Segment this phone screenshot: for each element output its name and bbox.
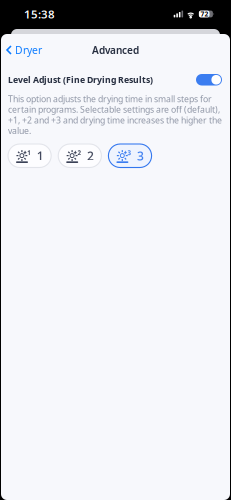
staticText: 1 [37,148,44,164]
staticText: 15:38 [24,6,55,22]
button[interactable]: Level Adjust [196,74,222,85]
staticText: Advanced [92,43,139,57]
staticText: This option adjusts the drying time in s… [8,93,222,136]
button[interactable]: +3 [108,144,152,167]
staticText: +3 [124,149,132,157]
staticText: +1 [23,149,31,157]
staticText: Dryer [15,43,42,57]
button[interactable]: +2 [58,144,101,167]
staticText: Level Adjust (Fine Drying Results) [8,74,153,85]
button[interactable]: +1 [8,144,51,167]
button[interactable]: Dryer [1,39,48,61]
staticText: 72 [200,10,208,18]
staticText: 2 [87,148,94,164]
staticText: 3 [137,148,144,164]
staticText: +2 [73,149,81,157]
